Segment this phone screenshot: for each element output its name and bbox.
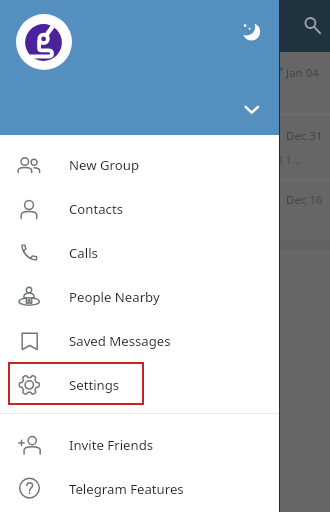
staticText: Saved Messages bbox=[69, 332, 171, 350]
button[interactable]: Saved Messages bbox=[0, 320, 279, 364]
staticText: Telegram Features bbox=[69, 480, 184, 498]
button[interactable]: Invite Friends bbox=[0, 424, 279, 468]
staticText: l 1... bbox=[280, 152, 301, 167]
button[interactable]: Telegram Features bbox=[0, 468, 279, 512]
staticText: Settings bbox=[69, 376, 120, 394]
staticText: New Group bbox=[69, 156, 140, 174]
button[interactable]: Contacts bbox=[0, 188, 279, 232]
button[interactable]: Profile photo bbox=[16, 14, 72, 70]
staticText: Jan 04 bbox=[286, 65, 319, 81]
button[interactable]: Settings bbox=[0, 364, 279, 408]
staticText: Dec 16 bbox=[286, 192, 323, 208]
button[interactable]: People Nearby bbox=[0, 276, 279, 320]
button[interactable]: Night mode bbox=[234, 12, 266, 44]
button[interactable]: Calls bbox=[0, 232, 279, 276]
button[interactable]: Expand accounts bbox=[234, 91, 266, 123]
staticText: Dec 31 bbox=[286, 128, 323, 144]
staticText: Calls bbox=[69, 244, 98, 262]
staticText: Contacts bbox=[69, 200, 124, 218]
button[interactable]: New Group bbox=[0, 144, 279, 188]
button[interactable]: Search bbox=[299, 12, 326, 39]
staticText: Invite Friends bbox=[69, 436, 154, 454]
staticText: People Nearby bbox=[69, 288, 160, 306]
